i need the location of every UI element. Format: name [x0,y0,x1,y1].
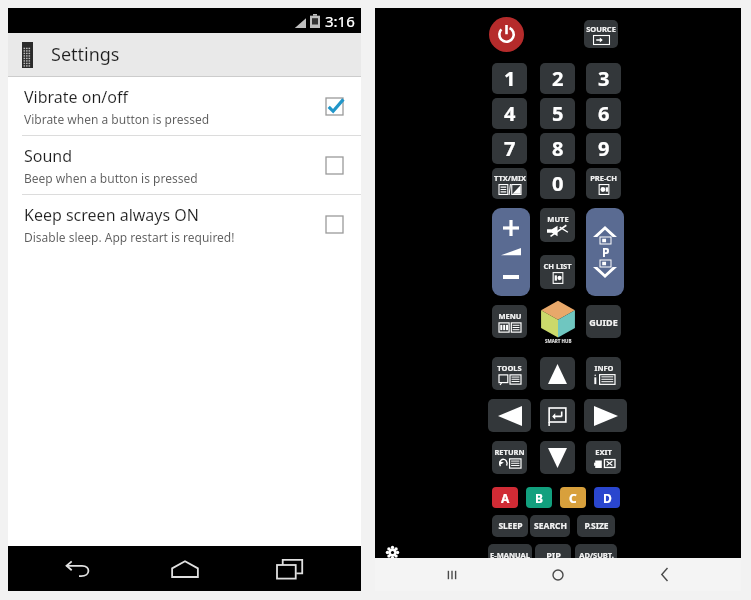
staticText: P [602,244,610,260]
button[interactable]: Channel up [586,208,624,237]
staticText: 3:16 [325,11,355,31]
button[interactable]: SOURCE [584,20,618,48]
button[interactable]: P.SIZE [577,515,615,537]
button[interactable]: Back [44,546,114,591]
button[interactable]: GUIDE [586,305,621,338]
staticText: RETURN [494,447,525,457]
staticText: Beep when a button is pressed [24,170,198,186]
button[interactable]: B [526,487,552,508]
staticText: E-MANUAL [490,550,530,560]
staticText: D [603,490,612,506]
button[interactable]: Settings [379,539,405,565]
button[interactable]: 6 [586,98,621,129]
button[interactable]: 0 [540,168,575,199]
staticText: P.SIZE [584,520,609,532]
button[interactable]: 7 [492,133,527,164]
staticText: Settings [51,42,120,67]
staticText: Disable sleep. App restart is required! [24,229,235,245]
staticText: Vibrate when a button is pressed [24,111,210,127]
button[interactable]: 5 [540,98,575,129]
staticText: SLEEP [498,520,523,532]
button[interactable]: Power [489,17,524,52]
staticText: 5 [552,100,564,127]
button[interactable]: PIP [535,544,571,566]
button[interactable]: Recents [422,558,482,591]
staticText: 0 [552,170,564,197]
staticText: SEARCH [534,520,567,532]
button[interactable]: SEARCH [530,515,570,537]
button[interactable]: Right [584,399,627,432]
button[interactable]: 8 [540,133,575,164]
button[interactable]: 4 [492,98,527,129]
button[interactable]: AD/SUBT. [575,544,617,566]
staticText: Vibrate on/off [24,86,129,108]
staticText: PIP [546,549,561,561]
button[interactable]: SLEEP [492,515,528,537]
button[interactable]: 2 [540,63,575,94]
staticText: Sound [24,145,73,167]
staticText: Keep screen always ON [24,204,199,226]
button[interactable]: Smart Hub [533,300,583,350]
staticText: CH LIST [543,261,572,271]
button[interactable]: Keep screen always ON [8,195,361,253]
staticText: PRE-CH [590,173,617,183]
button[interactable]: 3 [586,63,621,94]
button[interactable]: Down [540,441,575,474]
staticText: GUIDE [589,316,618,328]
staticText: 3 [598,65,610,92]
button[interactable]: TTX/MIX [492,168,527,199]
staticText: 9 [598,135,610,162]
button[interactable]: Home [150,546,220,591]
staticText: A [501,490,510,506]
staticText: 1 [504,65,516,92]
button[interactable]: Volume up [492,208,530,247]
staticText: EXIT [595,447,612,457]
staticText: C [569,490,577,506]
button[interactable]: D [594,487,620,508]
button[interactable]: TOOLS [492,357,527,390]
button[interactable]: Enter [540,399,575,432]
staticText: MUTE [547,214,569,224]
button[interactable]: Channel down [586,267,624,296]
staticText: 4 [504,100,516,127]
button[interactable]: CH LIST [540,255,575,289]
staticText: INFO [594,363,614,373]
button[interactable]: MUTE [540,208,575,242]
button[interactable]: Recents [255,546,325,591]
button[interactable]: Up [540,357,575,390]
staticText: TTX/MIX [494,173,526,183]
button[interactable]: Left [488,399,531,432]
button[interactable]: RETURN [492,441,527,474]
button[interactable]: Vibrate on/off [8,77,361,135]
staticText: SOURCE [586,24,616,34]
button[interactable]: E-MANUAL [488,544,532,566]
button[interactable]: PRE-CH [586,168,621,199]
staticText: AD/SUBT. [579,550,614,560]
staticText: MENU [498,311,522,321]
button[interactable]: A [492,487,518,508]
button[interactable]: Sound [8,136,361,194]
staticText: TOOLS [497,363,522,373]
button[interactable]: C [560,487,586,508]
staticText: 6 [598,100,610,127]
button[interactable]: Home [528,558,588,591]
button[interactable]: EXIT [586,441,621,474]
staticText: 8 [552,135,564,162]
button[interactable]: MENU [492,305,527,338]
button[interactable]: 9 [586,133,621,164]
button[interactable]: INFO [586,357,621,390]
staticText: B [535,490,543,506]
button[interactable]: Settings [8,33,361,76]
button[interactable]: Volume down [492,257,530,296]
staticText: SMART HUB [545,338,572,344]
button[interactable]: 1 [492,63,527,94]
staticText: 7 [504,135,516,162]
button[interactable]: Back [635,558,695,591]
staticText: 2 [552,65,564,92]
